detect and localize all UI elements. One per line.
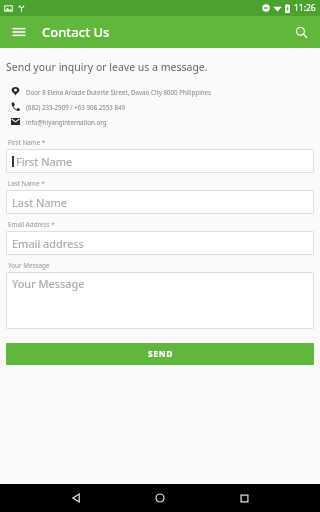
button[interactable]: First Name: [6, 149, 314, 173]
staticText: First Name: [16, 154, 73, 169]
button[interactable]: Search: [290, 21, 312, 43]
staticText: Your Message: [12, 276, 85, 291]
button[interactable]: info@hiyanginternation.org: [6, 116, 314, 127]
button[interactable]: Door 8 Elena Arcade Duterte Street, Dava…: [6, 86, 314, 97]
staticText: Last Name *: [8, 179, 45, 188]
button[interactable]: Open navigation menu: [8, 21, 30, 43]
staticText: info@hiyanginternation.org: [26, 118, 107, 126]
button[interactable]: Recent apps: [230, 484, 258, 512]
staticText: Email Address *: [8, 220, 55, 229]
staticText: Send your inquiry or leave us a message.: [6, 60, 208, 74]
button[interactable]: Back: [62, 484, 90, 512]
staticText: 11:26: [294, 2, 316, 14]
button[interactable]: (082) 233-2909 / +63 908 2553 849: [6, 101, 314, 112]
button[interactable]: Last Name: [6, 190, 314, 214]
staticText: Door 8 Elena Arcade Duterte Street, Dava…: [26, 88, 212, 96]
button[interactable]: Home: [146, 484, 174, 512]
staticText: (082) 233-2909 / +63 908 2553 849: [26, 103, 126, 111]
staticText: Your Message: [8, 261, 50, 270]
button[interactable]: SEND: [6, 343, 314, 365]
staticText: Contact Us: [42, 23, 110, 41]
button[interactable]: Email address: [6, 231, 314, 255]
staticText: SEND: [148, 348, 173, 360]
staticText: First Name *: [8, 138, 46, 147]
staticText: Last Name: [12, 195, 68, 210]
button[interactable]: Your Message: [6, 272, 314, 329]
staticText: Email address: [12, 236, 84, 251]
